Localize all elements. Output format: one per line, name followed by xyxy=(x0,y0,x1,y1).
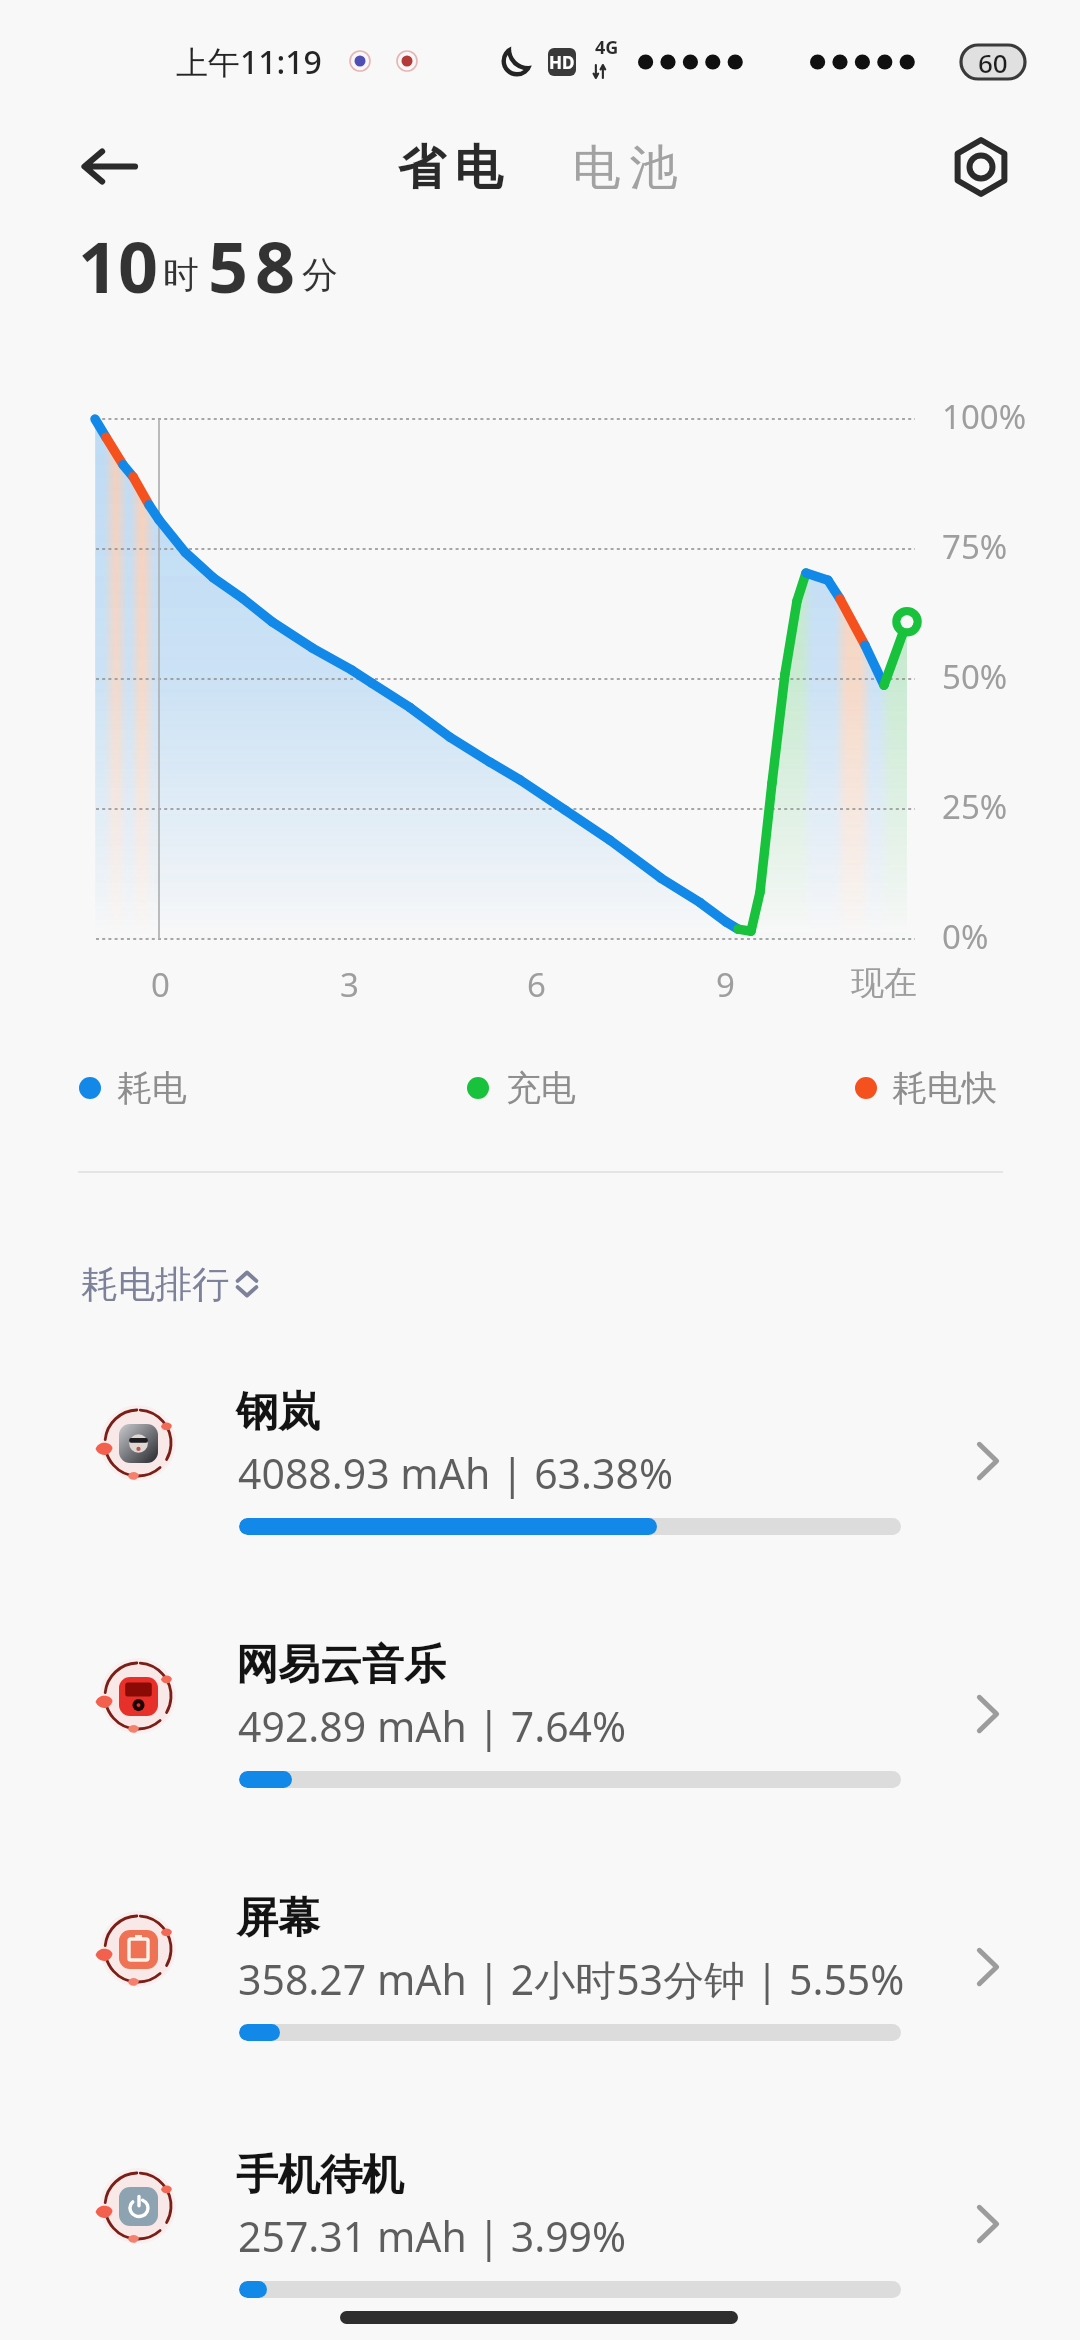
staticText: 358.27 mAh | 2小时53分钟 | 5.55% xyxy=(238,1951,905,2007)
staticText: 充电 xyxy=(506,1066,576,1110)
button[interactable]: 手机待机 xyxy=(0,2115,1080,2340)
staticText: 75% xyxy=(942,524,1008,569)
button[interactable]: Back xyxy=(65,122,153,210)
staticText: 省电 xyxy=(393,138,507,198)
button[interactable]: 耗电 xyxy=(68,1064,200,1112)
button[interactable]: 耗电快 xyxy=(844,1064,1012,1112)
staticText: 58 xyxy=(208,218,303,313)
staticText: 钢岚 xyxy=(236,1386,320,1439)
staticText: 50% xyxy=(942,654,1008,699)
button[interactable]: Settings xyxy=(937,123,1025,211)
staticText: 4G xyxy=(595,35,619,60)
button[interactable]: 充电 xyxy=(456,1064,588,1112)
staticText: 10 xyxy=(78,218,159,313)
staticText: 屏幕 xyxy=(236,1892,320,1945)
staticText: 25% xyxy=(942,784,1008,829)
staticText: 时 xyxy=(163,252,199,297)
staticText: 现在 xyxy=(851,962,917,1004)
staticText: 3 xyxy=(340,962,359,1007)
staticText: 6 xyxy=(527,962,546,1007)
button[interactable]: 电池 xyxy=(560,128,690,208)
staticText: 耗电排行 xyxy=(81,1261,229,1308)
staticText: 耗电 xyxy=(117,1066,187,1110)
button[interactable]: 钢岚 xyxy=(0,1352,1080,1603)
button[interactable]: 屏幕 xyxy=(0,1858,1080,2109)
staticText: 网易云音乐 xyxy=(236,1639,446,1692)
staticText: 耗电快 xyxy=(892,1066,997,1110)
staticText: HD xyxy=(549,51,575,74)
staticText: 电池 xyxy=(568,138,682,198)
staticText: 上午11:19 xyxy=(176,40,322,84)
button[interactable]: 耗电排行 xyxy=(70,1256,270,1312)
staticText: 分 xyxy=(302,252,338,297)
staticText: 9 xyxy=(716,962,735,1007)
staticText: 0% xyxy=(942,914,989,959)
staticText: 257.31 mAh | 3.99% xyxy=(238,2208,627,2264)
staticText: 0 xyxy=(151,962,170,1007)
staticText: 60 xyxy=(978,45,1008,79)
button[interactable]: 省电 xyxy=(385,128,515,208)
staticText: 492.89 mAh | 7.64% xyxy=(238,1698,627,1754)
staticText: 4088.93 mAh | 63.38% xyxy=(238,1445,674,1501)
staticText: 手机待机 xyxy=(236,2149,404,2202)
button[interactable]: 网易云音乐 xyxy=(0,1605,1080,1856)
staticText: 100% xyxy=(942,394,1027,439)
